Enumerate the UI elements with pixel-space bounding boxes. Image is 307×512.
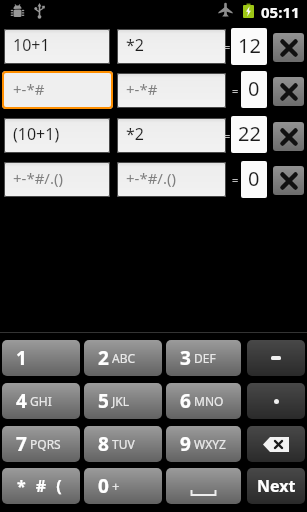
button[interactable]: 0 — [241, 161, 267, 198]
staticText: 22 — [238, 120, 261, 147]
staticText: = — [224, 39, 231, 54]
staticText: *2 — [126, 123, 144, 145]
button[interactable]: (10+1) — [4, 118, 110, 153]
staticText: 1 — [16, 345, 27, 371]
staticText: 3 — [180, 345, 191, 371]
staticText: Next — [257, 475, 296, 497]
button[interactable] — [247, 426, 305, 462]
staticText: 5 — [98, 388, 109, 414]
button[interactable]: 3 — [166, 340, 241, 376]
staticText: 8 — [98, 431, 109, 457]
staticText: 12 — [238, 32, 261, 59]
button[interactable]: *2 — [117, 29, 226, 64]
button[interactable]: 4 — [2, 383, 80, 419]
staticText: 4 — [16, 388, 27, 414]
staticText: + — [112, 477, 120, 495]
button[interactable]: +-*# — [117, 73, 226, 108]
staticText: 9 — [180, 431, 191, 457]
staticText: = — [224, 128, 231, 143]
staticText: GHI — [30, 393, 52, 409]
staticText: PQRS — [30, 436, 61, 452]
button[interactable]: Next — [247, 468, 305, 504]
staticText: 0 — [248, 75, 260, 102]
staticText: 10+1 — [13, 34, 50, 56]
button[interactable]: 22 — [231, 116, 267, 153]
staticText: (10+1) — [13, 123, 60, 145]
staticText: DEF — [194, 350, 216, 366]
button[interactable]: 5 — [84, 383, 162, 419]
staticText: 0 — [248, 165, 260, 192]
staticText: +-*#/.() — [13, 168, 63, 188]
staticText: ABC — [112, 350, 136, 366]
button[interactable]: *2 — [117, 118, 226, 153]
button[interactable] — [273, 77, 304, 106]
button[interactable]: 12 — [231, 28, 267, 65]
staticText: 7 — [16, 431, 27, 457]
staticText: * # ( — [17, 475, 65, 497]
staticText: WXYZ — [194, 436, 226, 452]
staticText: +-*# — [126, 79, 158, 99]
button[interactable]: 0 — [84, 468, 162, 504]
staticText: JKL — [112, 393, 129, 409]
button[interactable] — [273, 122, 304, 151]
staticText: *2 — [126, 34, 144, 56]
button[interactable]: 10+1 — [4, 29, 110, 64]
button[interactable]: 9 — [166, 426, 241, 462]
button[interactable]: 2 — [84, 340, 162, 376]
button[interactable]: 0 — [241, 71, 267, 108]
staticText: = — [232, 83, 239, 98]
staticText: MNO — [194, 393, 224, 409]
button[interactable]: +-*#/.() — [117, 162, 226, 197]
staticText: +-*# — [13, 79, 45, 99]
button[interactable]: 7 — [2, 426, 80, 462]
staticText: 2 — [98, 345, 109, 371]
button[interactable] — [273, 33, 304, 62]
staticText: = — [232, 172, 239, 187]
button[interactable]: 1 — [2, 340, 80, 376]
button[interactable]: +-*# — [2, 71, 113, 109]
button[interactable] — [247, 383, 305, 419]
staticText: 6 — [180, 388, 191, 414]
button[interactable] — [273, 166, 304, 195]
staticText: 0 — [98, 473, 109, 499]
button[interactable] — [166, 468, 241, 504]
staticText: +-*#/.() — [126, 168, 176, 188]
button[interactable]: * # ( — [2, 468, 80, 504]
staticText: 05:11 — [261, 2, 300, 22]
button[interactable]: 8 — [84, 426, 162, 462]
button[interactable]: 6 — [166, 383, 241, 419]
button[interactable]: +-*#/.() — [4, 162, 110, 197]
button[interactable] — [247, 340, 305, 376]
staticText: TUV — [112, 436, 135, 452]
